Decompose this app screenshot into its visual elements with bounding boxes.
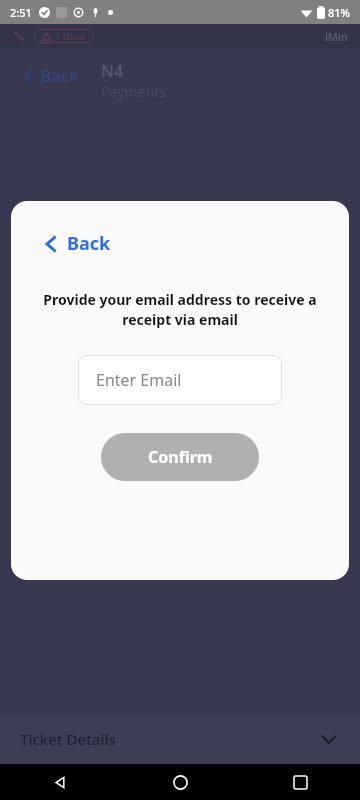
staticText: 2:51	[10, 5, 32, 20]
staticText: Confirm	[148, 446, 213, 468]
button[interactable]: Enter Email	[78, 355, 282, 405]
staticText: Ticket Details	[20, 729, 116, 749]
button[interactable]: Confirm	[101, 433, 259, 481]
staticText: Provide your email address to receive a …	[33, 290, 327, 329]
staticText: iMin	[325, 29, 348, 44]
staticText: 1 Issue	[55, 30, 86, 42]
staticText: Back	[67, 231, 111, 256]
staticText: Enter Email	[96, 369, 182, 391]
button[interactable]: Home	[120, 764, 240, 800]
button[interactable]: Back	[20, 60, 79, 91]
staticText: 81%	[328, 5, 350, 20]
staticText: Back	[40, 64, 79, 87]
button[interactable]: Network status	[12, 29, 26, 43]
staticText: Payments	[101, 82, 166, 101]
staticText: N4	[101, 60, 124, 82]
button[interactable]: Ticket Details	[0, 714, 360, 764]
button[interactable]: Recent apps	[240, 764, 360, 800]
button[interactable]: 1 Issue	[34, 29, 94, 43]
button[interactable]: Back	[0, 764, 120, 800]
button[interactable]: Back	[39, 227, 113, 260]
